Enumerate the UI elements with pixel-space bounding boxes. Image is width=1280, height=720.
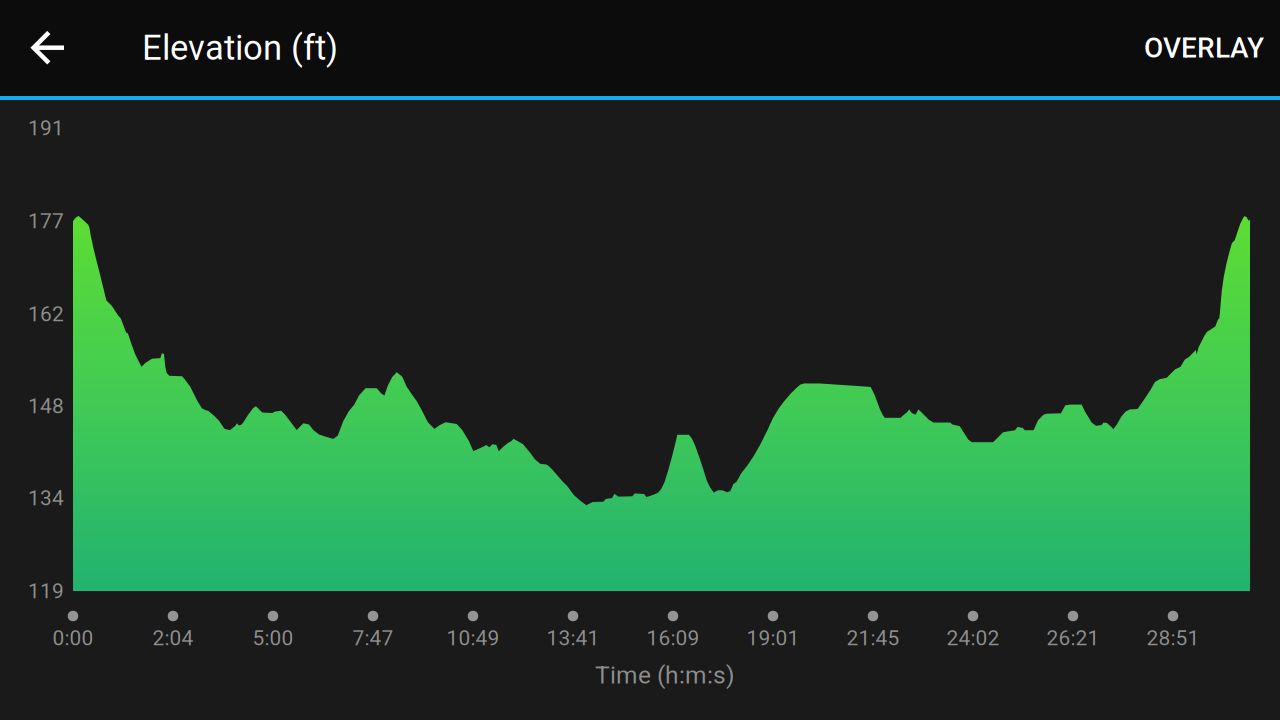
- staticText: 119: [28, 579, 64, 603]
- staticText: Time (h:m:s): [595, 661, 735, 689]
- staticText: OVERLAY: [1144, 32, 1264, 64]
- staticText: 177: [28, 209, 64, 233]
- staticText: 26:21: [1046, 626, 1099, 650]
- staticText: 2:04: [152, 626, 193, 650]
- staticText: 0:00: [52, 626, 93, 650]
- staticText: 10:49: [446, 626, 499, 650]
- staticText: 24:02: [946, 626, 999, 650]
- staticText: 13:41: [546, 626, 599, 650]
- button[interactable]: OVERLAY: [1128, 0, 1280, 96]
- staticText: 5:00: [252, 626, 293, 650]
- staticText: 28:51: [1146, 626, 1199, 650]
- staticText: 191: [28, 116, 64, 140]
- staticText: 21:45: [846, 626, 899, 650]
- staticText: 148: [28, 394, 64, 418]
- staticText: 134: [28, 486, 64, 510]
- staticText: Elevation (ft): [142, 28, 338, 68]
- staticText: 16:09: [646, 626, 699, 650]
- staticText: 19:01: [746, 626, 799, 650]
- button[interactable]: Back: [0, 0, 96, 96]
- staticText: 162: [28, 302, 64, 326]
- staticText: 7:47: [352, 626, 393, 650]
